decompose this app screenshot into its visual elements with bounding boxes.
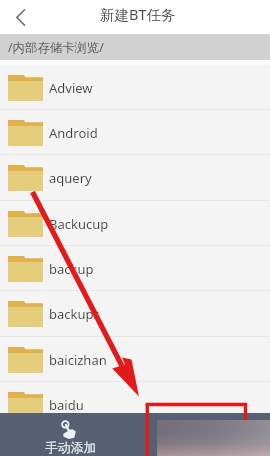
button[interactable]: baidu — [0, 382, 270, 427]
staticText: 新建BT任务 — [100, 4, 176, 24]
button[interactable]: Backucup — [0, 201, 270, 246]
button[interactable]: Adview — [0, 65, 270, 110]
staticText: Backucup — [49, 215, 109, 233]
button[interactable]: aquery — [0, 155, 270, 200]
staticText: baidu — [49, 396, 84, 414]
staticText: aquery — [49, 169, 92, 187]
staticText: backups — [49, 305, 100, 323]
button[interactable]: /内部存储卡浏览/ — [0, 34, 270, 60]
staticText: Android — [49, 124, 98, 142]
staticText: backup — [49, 260, 94, 278]
staticText: /内部存储卡浏览/ — [8, 39, 104, 56]
button[interactable]: backup — [0, 246, 270, 291]
staticText: 手动添加 — [45, 440, 97, 456]
button[interactable]: baicizhan — [0, 337, 270, 382]
button[interactable]: Android — [0, 110, 270, 155]
staticText: Adview — [49, 79, 93, 97]
button[interactable]: Back — [0, 0, 42, 34]
button[interactable]: backups — [0, 291, 270, 336]
staticText: baicizhan — [49, 351, 107, 369]
button[interactable]: 手动添加 — [0, 413, 137, 456]
